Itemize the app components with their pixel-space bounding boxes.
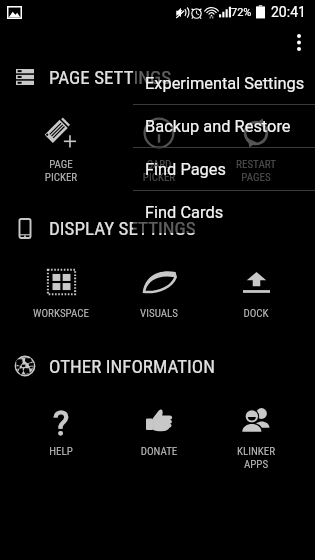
button[interactable]: Find Pages [133,148,315,191]
button[interactable]: VISUALS [113,264,205,320]
staticText: ? [53,403,70,439]
button[interactable]: CARD PICKER [113,115,205,184]
button[interactable]: ? [15,402,107,458]
staticText: WORKSPACE [15,307,107,320]
button[interactable]: RESTART PAGES [210,115,302,184]
staticText: DONATE [113,445,205,458]
button[interactable]: Find Cards [133,191,315,233]
staticText: OTHER INFORMATION [49,355,216,377]
staticText: PAGE PICKER [15,158,107,184]
staticText: Backup and Restore [145,117,291,136]
button[interactable]: KLINKER APPS [210,402,302,471]
staticText: Experimental Settings [145,74,305,93]
button[interactable]: WORKSPACE [15,264,107,320]
button[interactable]: DONATE [113,402,205,458]
staticText: Find Pages [145,160,226,179]
staticText: KLINKER APPS [210,445,302,471]
button[interactable]: DOCK [210,264,302,320]
button[interactable]: PAGE PICKER [15,115,107,184]
staticText: Find Cards [145,203,224,222]
button[interactable]: More options [283,26,315,58]
staticText: 20:41 [271,4,306,20]
button[interactable]: Experimental Settings [133,62,315,105]
staticText: DISPLAY SETTINGS [49,217,196,239]
staticText: 72% [231,6,252,19]
staticText: PAGE SETTINGS [49,66,172,88]
staticText: VISUALS [113,307,205,320]
staticText: HELP [15,445,107,458]
staticText: DOCK [210,307,302,320]
staticText: CARD PICKER [113,158,205,184]
button[interactable]: Backup and Restore [133,105,315,148]
staticText: RESTART PAGES [210,158,302,184]
